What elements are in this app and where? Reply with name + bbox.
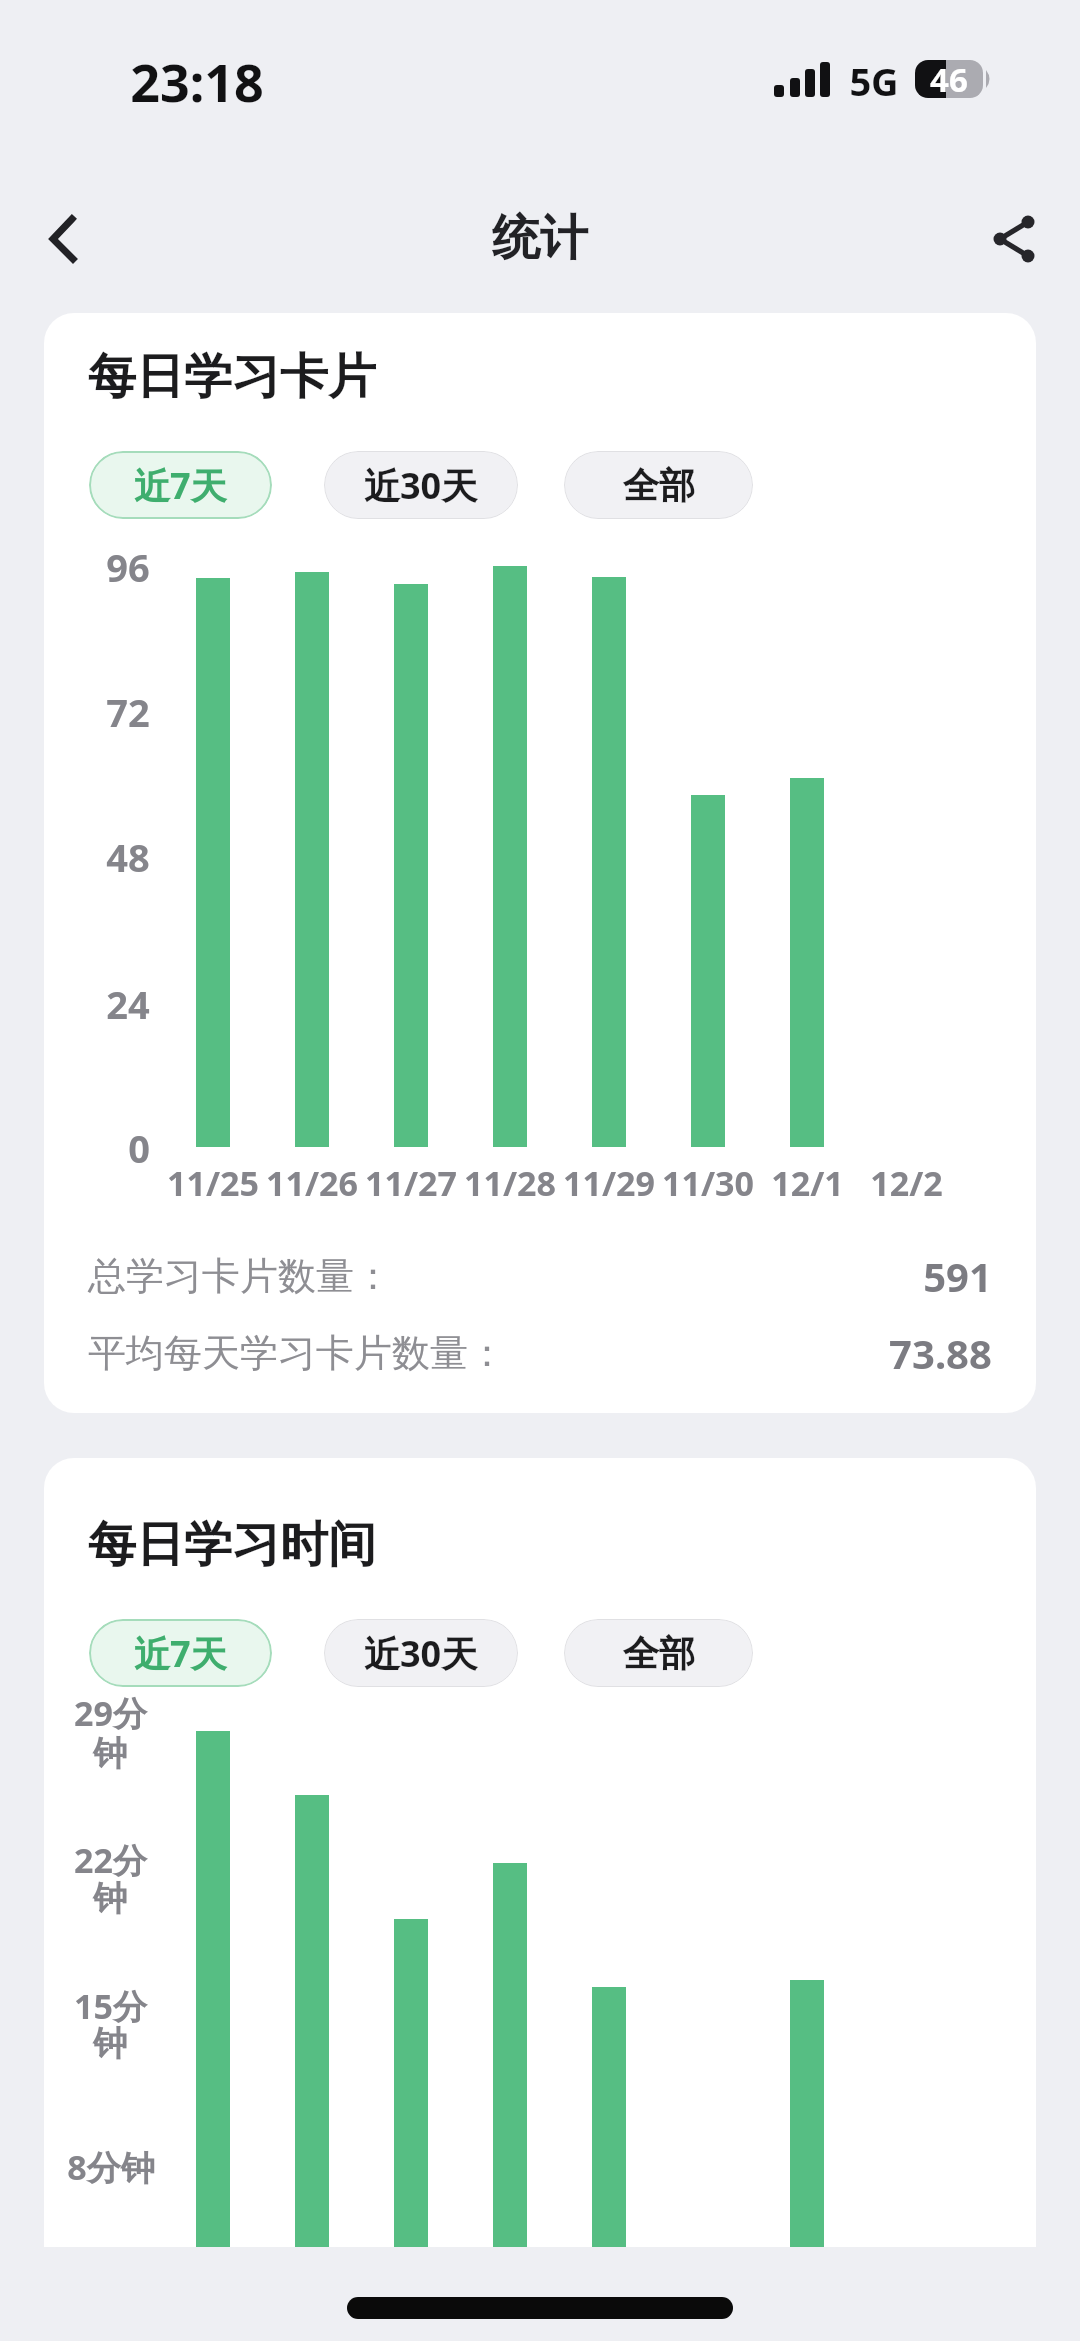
staticText: 11/29 xyxy=(563,1160,655,1206)
staticText: 近7天 xyxy=(134,461,227,510)
staticText: 15分 xyxy=(74,1983,147,2029)
staticText: 24 xyxy=(106,978,150,1030)
staticText: 22分 xyxy=(74,1837,147,1883)
staticText: 0 xyxy=(128,1122,150,1174)
staticText: 48 xyxy=(106,831,150,883)
staticText: 钟 xyxy=(93,1877,127,1920)
staticText: 统计 xyxy=(492,208,588,268)
button[interactable] xyxy=(980,205,1050,275)
staticText: 29分 xyxy=(74,1690,147,1736)
staticText: 73.88 xyxy=(889,1326,992,1380)
button[interactable]: 近30天 xyxy=(324,451,518,519)
staticText: 72 xyxy=(106,686,150,738)
staticText: 每日学习卡片 xyxy=(88,347,376,407)
staticText: 12/2 xyxy=(870,1160,943,1206)
staticText: 11/28 xyxy=(464,1160,556,1206)
button[interactable]: 近30天 xyxy=(324,1619,518,1687)
staticText: 8分钟 xyxy=(67,2144,155,2190)
staticText: 钟 xyxy=(93,1732,127,1775)
button[interactable]: 全部 xyxy=(564,1619,753,1687)
staticText: 近7天 xyxy=(134,1629,227,1678)
staticText: 591 xyxy=(923,1249,992,1303)
staticText: 总学习卡片数量： xyxy=(88,1252,392,1300)
button[interactable]: 近7天 xyxy=(89,451,272,519)
staticText: 46 xyxy=(930,57,968,102)
staticText: 12/1 xyxy=(771,1160,844,1206)
staticText: 全部 xyxy=(623,1631,695,1676)
staticText: 96 xyxy=(106,541,150,593)
staticText: 平均每天学习卡片数量： xyxy=(88,1329,506,1377)
staticText: 钟 xyxy=(93,2022,127,2065)
staticText: 11/30 xyxy=(662,1160,754,1206)
staticText: 全部 xyxy=(623,463,695,508)
button[interactable]: 全部 xyxy=(564,451,753,519)
staticText: 11/25 xyxy=(167,1160,259,1206)
staticText: 11/26 xyxy=(266,1160,358,1206)
staticText: 5G xyxy=(849,55,899,107)
button[interactable] xyxy=(30,205,100,275)
staticText: 23:18 xyxy=(130,46,264,117)
button[interactable]: 近7天 xyxy=(89,1619,272,1687)
staticText: 11/27 xyxy=(365,1160,457,1206)
staticText: 近30天 xyxy=(364,461,478,510)
staticText: 近30天 xyxy=(364,1629,478,1678)
staticText: 每日学习时间 xyxy=(88,1515,376,1575)
